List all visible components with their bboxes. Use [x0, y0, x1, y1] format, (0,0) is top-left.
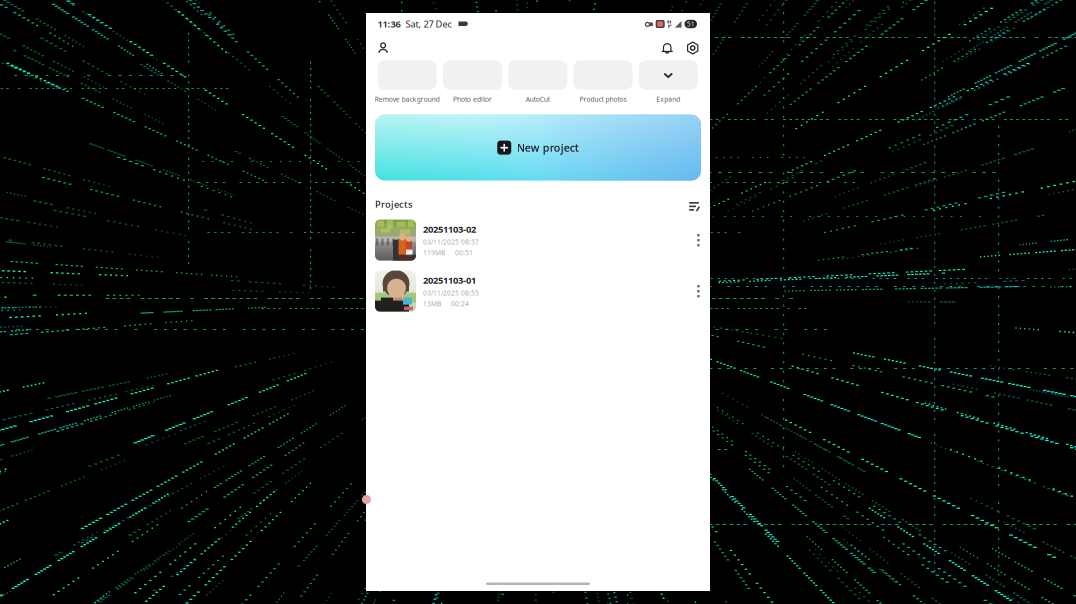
button[interactable]: Remove background: [378, 60, 437, 104]
staticText: 11:36: [377, 18, 400, 30]
staticText: AutoCut: [526, 95, 550, 104]
staticText: Sat, 27 Dec: [405, 18, 451, 30]
staticText: Projects: [375, 198, 413, 210]
button[interactable]: Photo editor: [443, 60, 502, 104]
staticText: New project: [517, 140, 579, 155]
staticText: 03/11/2025 08:55: [423, 288, 479, 297]
staticText: Expand: [656, 95, 680, 104]
staticText: 20251103-02: [423, 223, 476, 235]
staticText: Product photos: [579, 95, 626, 104]
staticText: 13MB 00:24: [423, 299, 469, 308]
button[interactable]: Notifications: [656, 36, 679, 59]
staticText: 119MB 00:51: [423, 248, 473, 257]
staticText: 03/11/2025 08:57: [423, 237, 479, 246]
button[interactable]: 20251103-01: [366, 266, 710, 317]
button[interactable]: Account: [372, 36, 395, 59]
button[interactable]: AutoCut: [508, 60, 567, 104]
button[interactable]: New project: [375, 115, 701, 181]
button[interactable]: Settings: [681, 36, 704, 59]
staticText: Photo editor: [453, 95, 492, 104]
button[interactable]: Expand: [639, 60, 698, 104]
staticText: 20251103-01: [423, 274, 476, 286]
button[interactable]: 20251103-02: [366, 215, 710, 266]
staticText: Remove background: [375, 95, 440, 104]
button[interactable]: Sort projects: [686, 194, 703, 215]
staticText: 51: [687, 20, 695, 28]
button[interactable]: Product photos: [573, 60, 632, 104]
